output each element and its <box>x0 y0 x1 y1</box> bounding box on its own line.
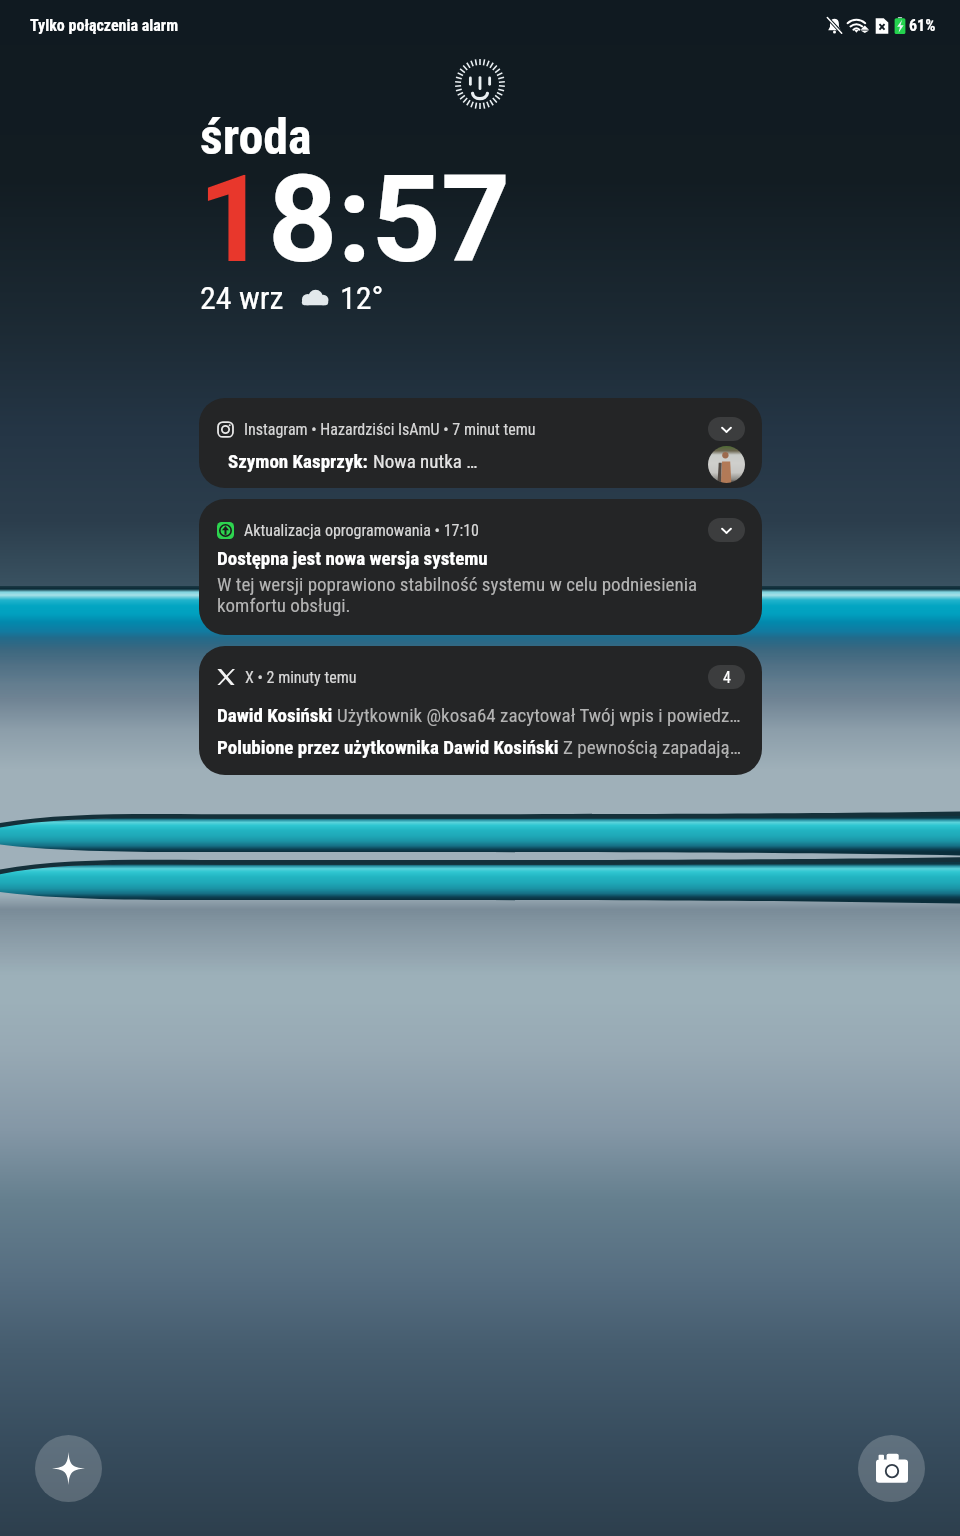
button[interactable]: Rozwiń <box>708 518 745 542</box>
staticText: W tej wersji poprawiono stabilność syste… <box>217 573 745 617</box>
staticText: Instagram • Hazardziści IsAmU • 7 minut … <box>244 420 536 439</box>
staticText: 4 <box>723 668 731 687</box>
staticText: 24 wrz <box>200 279 284 317</box>
button[interactable]: 4 <box>708 665 745 689</box>
staticText: 8:57 <box>268 149 511 291</box>
staticText: Tylko połączenia alarm <box>30 16 179 35</box>
staticText: 61% <box>909 16 936 35</box>
staticText: 1 <box>198 149 268 291</box>
button[interactable]: Rozwiń <box>708 417 745 441</box>
staticText: Szymon Kasprzyk: <box>228 450 373 472</box>
staticText: X • 2 minuty temu <box>245 668 357 687</box>
staticText: Użytkownik @kosa64 zacytował Twój wpis i… <box>337 704 741 726</box>
staticText: Nowa nutka … <box>373 450 478 472</box>
staticText: Z pewnością zapadają… <box>563 736 741 758</box>
button[interactable]: Instagram • Hazardziści IsAmU • 7 minut … <box>199 398 762 488</box>
staticText: środa <box>200 108 312 167</box>
staticText: Dostępna jest nowa wersja systemu <box>217 547 488 569</box>
staticText: 12° <box>340 279 384 317</box>
staticText: Dawid Kosiński <box>217 704 337 726</box>
staticText: Aktualizacja oprogramowania • 17:10 <box>244 521 479 540</box>
staticText: Polubione przez użytkownika Dawid Kosińs… <box>217 736 563 758</box>
button[interactable]: Aparat <box>858 1435 925 1502</box>
button[interactable]: Asystent <box>35 1435 102 1502</box>
button[interactable]: Aktualizacja oprogramowania • 17:10 <box>199 499 762 635</box>
button[interactable]: X • 2 minuty temu <box>199 646 762 775</box>
